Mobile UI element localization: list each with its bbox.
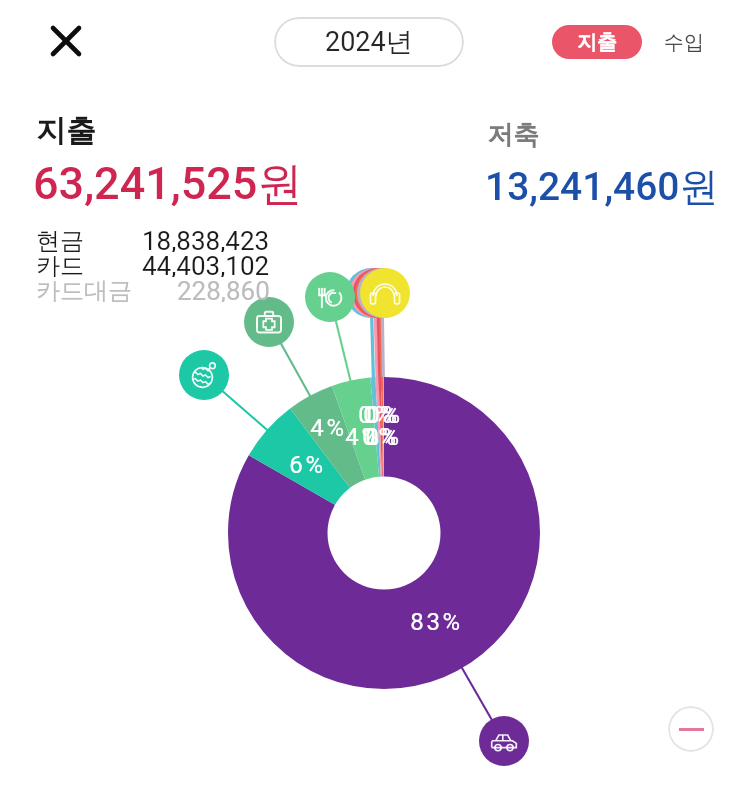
staticText: 저축	[487, 119, 539, 152]
button[interactable]: Medical	[244, 297, 294, 347]
button[interactable]: 지출	[552, 25, 642, 59]
staticText: 83%	[410, 608, 463, 636]
staticText: 카드대금	[36, 276, 132, 302]
staticText: 44,403,102	[142, 251, 270, 277]
button[interactable]: 수입	[652, 25, 716, 59]
staticText: 13,241,460원	[485, 162, 719, 211]
staticText: 지출	[577, 30, 617, 55]
staticText: 228,860	[177, 276, 270, 302]
staticText: 0%	[362, 423, 399, 451]
staticText: 6%	[289, 451, 326, 479]
staticText: 4%	[345, 423, 382, 451]
button[interactable]: Entertainment	[360, 268, 410, 318]
staticText: 0%	[365, 423, 402, 451]
staticText: 수입	[664, 30, 704, 55]
button[interactable]: 2024년	[274, 17, 464, 67]
staticText: 2024년	[325, 25, 413, 59]
button[interactable]: Gifts	[179, 350, 229, 400]
staticText: 63,241,525원	[33, 156, 303, 213]
staticText: 0%	[363, 401, 400, 429]
button[interactable]: Close	[42, 17, 90, 65]
staticText: 0%	[366, 401, 403, 429]
staticText: 4%	[310, 414, 347, 442]
staticText: 현금	[36, 226, 84, 252]
staticText: 0%	[358, 401, 395, 429]
staticText: 지출	[36, 112, 96, 150]
staticText: 카드	[36, 251, 84, 277]
button[interactable]: Food	[305, 272, 355, 322]
button[interactable]: Collapse	[668, 706, 714, 752]
staticText: 18,838,423	[142, 226, 270, 252]
button[interactable]: Transport	[479, 716, 529, 766]
